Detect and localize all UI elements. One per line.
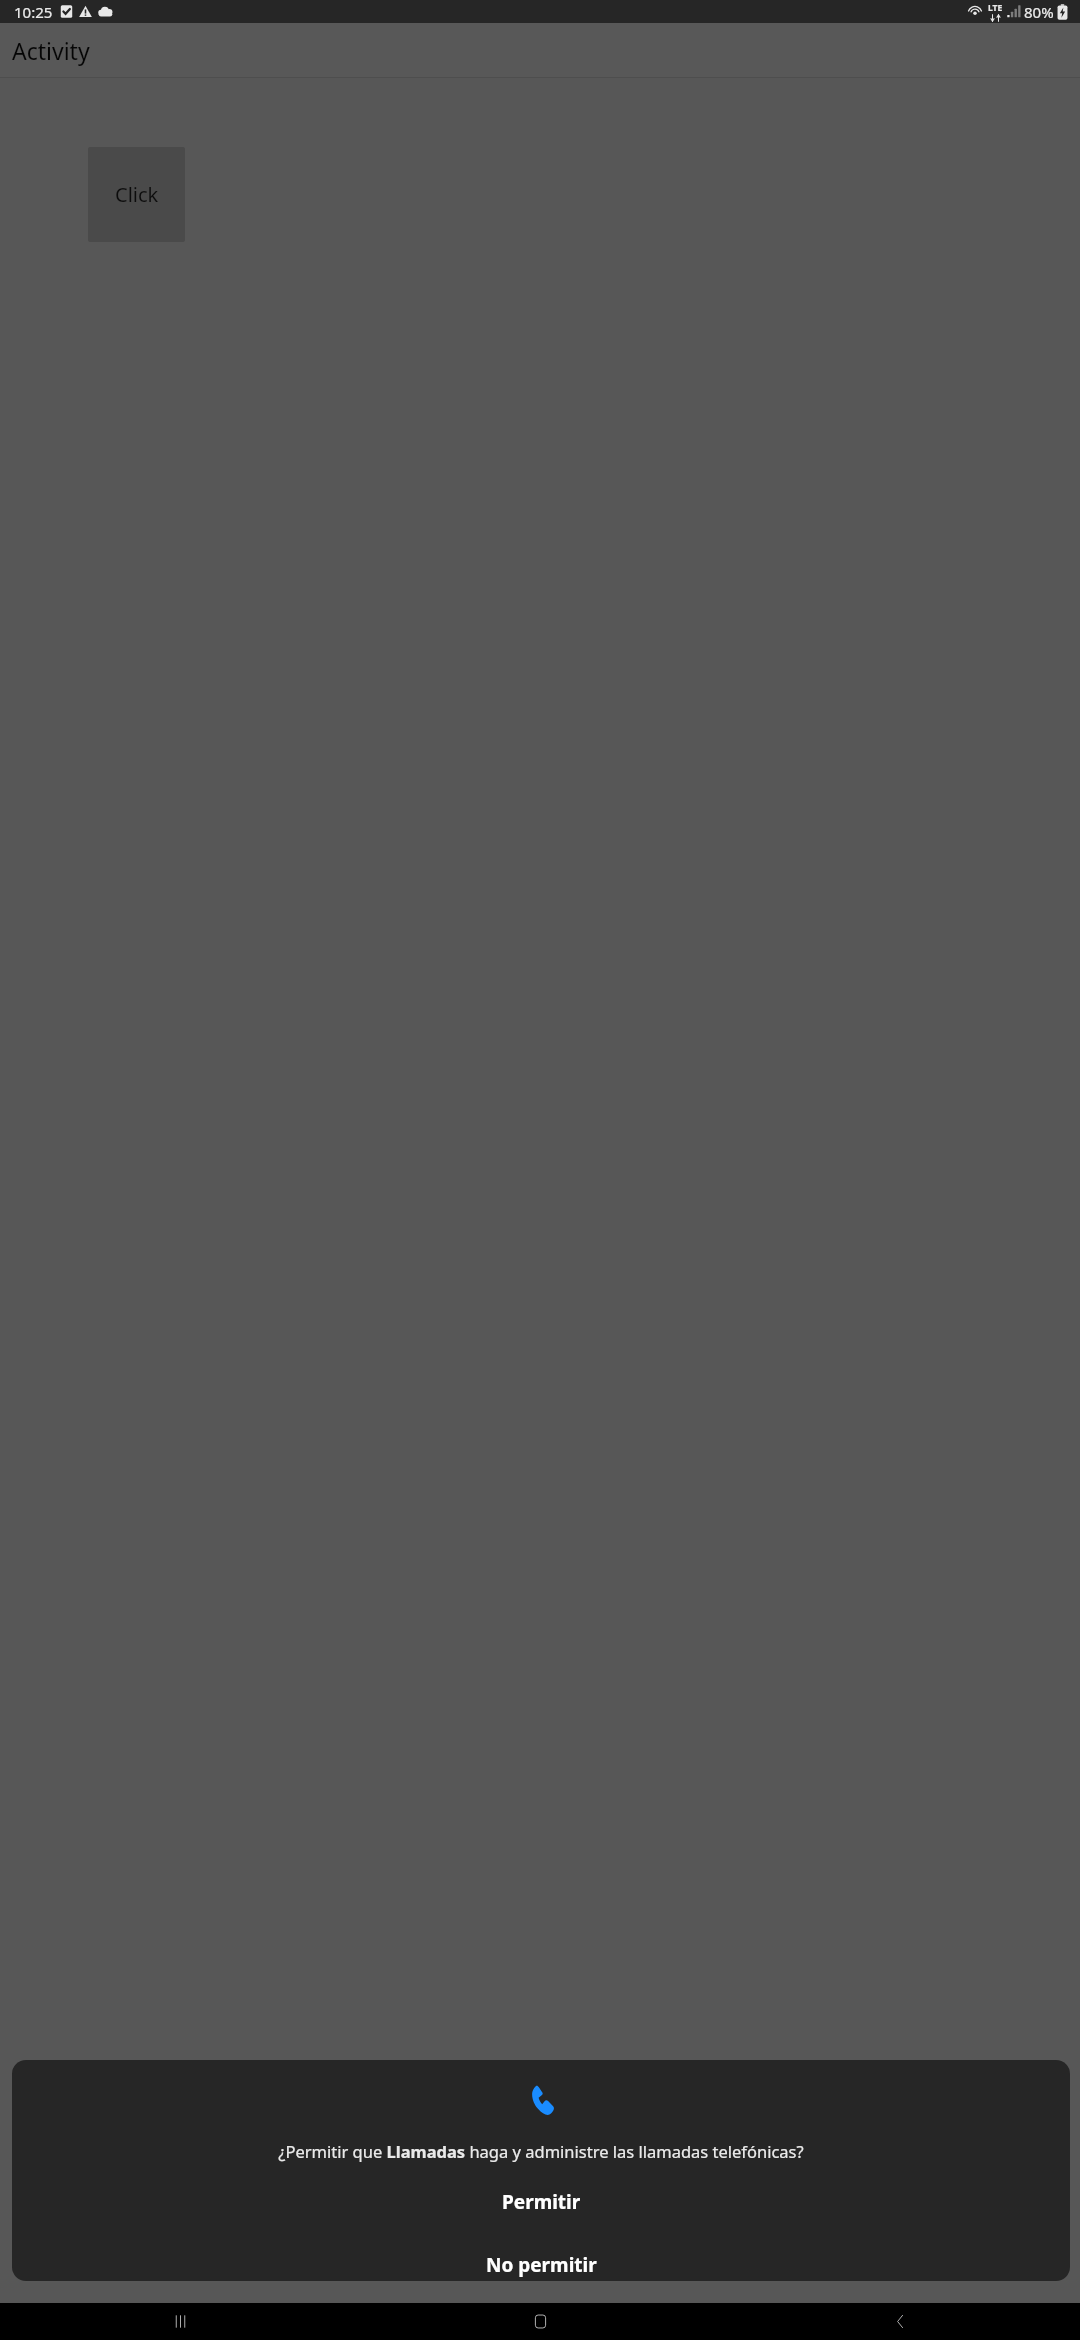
button[interactable]: Permitir bbox=[12, 2184, 1070, 2220]
button[interactable]: Home bbox=[360, 2303, 720, 2340]
staticText: Permitir bbox=[502, 2189, 581, 2215]
staticText: Click bbox=[115, 181, 159, 208]
button[interactable]: Click bbox=[88, 147, 185, 242]
staticText: 80% bbox=[1024, 2, 1054, 22]
button[interactable]: Back bbox=[720, 2303, 1080, 2340]
staticText: Activity bbox=[12, 35, 90, 66]
staticText: No permitir bbox=[486, 2252, 597, 2278]
staticText: 10:25 bbox=[14, 2, 53, 22]
staticText: ¿Permitir que Llamadas haga y administre… bbox=[278, 2140, 804, 2162]
button[interactable]: No permitir bbox=[12, 2249, 1070, 2281]
button[interactable]: Recent apps bbox=[0, 2303, 360, 2340]
staticText: LTE bbox=[988, 2, 1003, 14]
